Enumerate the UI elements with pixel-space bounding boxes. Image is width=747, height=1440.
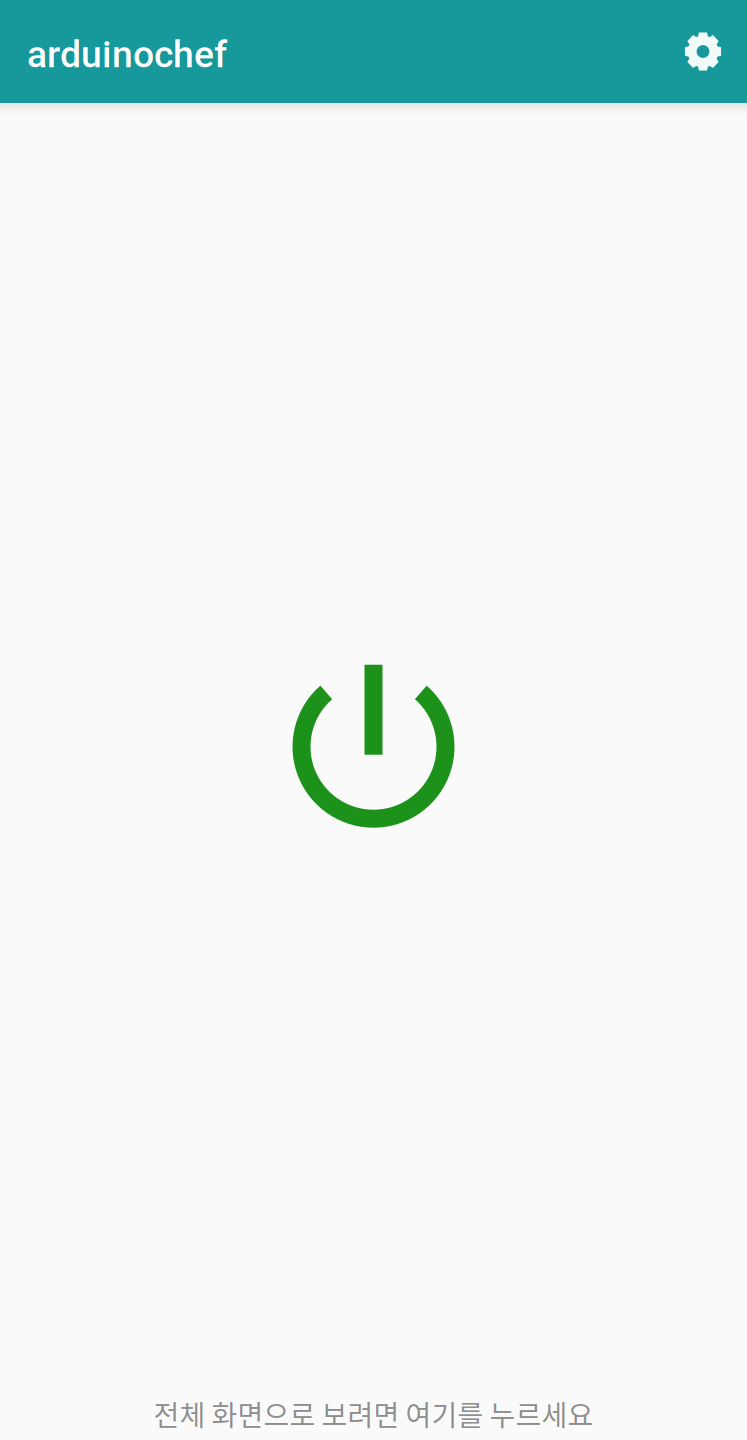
staticText: arduinochef [27, 33, 227, 76]
button[interactable]: 전체 화면으로 보려면 여기를 누르세요 [0, 1387, 747, 1440]
staticText: 전체 화면으로 보려면 여기를 누르세요 [153, 1393, 593, 1434]
button[interactable]: Settings [660, 8, 746, 94]
button[interactable]: Power [278, 651, 468, 842]
